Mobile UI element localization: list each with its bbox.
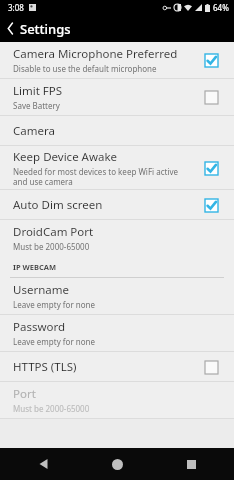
button[interactable]: Username	[0, 278, 234, 314]
staticText: 3:08	[8, 2, 24, 13]
staticText: Disable to use the default microphone	[13, 63, 157, 74]
staticText: Must be 2000-65000	[13, 241, 90, 252]
button[interactable]: Limit FPS unchecked	[199, 85, 223, 109]
staticText: Password	[13, 319, 66, 335]
button[interactable]: Recent apps	[161, 448, 221, 480]
staticText: Must be 2000-65000	[13, 403, 90, 414]
staticText: DroidCam Port	[13, 224, 94, 240]
staticText: Leave empty for none	[13, 336, 96, 347]
button[interactable]: Camera Microphone Preferred checked	[199, 48, 223, 72]
button[interactable]: Keep Device Awake	[0, 146, 234, 189]
button[interactable]: Auto Dim screen	[0, 190, 234, 219]
staticText: Limit FPS	[13, 83, 63, 99]
staticText: Keep Device Awake	[13, 149, 118, 165]
button[interactable]: HTTPS (TLS) unchecked	[199, 355, 223, 379]
button[interactable]: Port	[0, 382, 234, 418]
button[interactable]: Password	[0, 315, 234, 351]
button[interactable]: Home	[87, 448, 147, 480]
staticText: Leave empty for none	[13, 299, 96, 310]
staticText: Username	[13, 282, 69, 298]
button[interactable]: Back	[0, 15, 20, 42]
staticText: 64%	[213, 2, 229, 13]
staticText: Auto Dim screen	[13, 197, 103, 213]
staticText: Camera Microphone Preferred	[13, 46, 178, 62]
button[interactable]: Camera	[0, 116, 234, 145]
staticText: Needed for most devices to keep WiFi act…	[13, 166, 179, 187]
staticText: HTTPS (TLS)	[13, 359, 77, 375]
button[interactable]: Limit FPS	[0, 79, 234, 115]
staticText: Save Battery	[13, 100, 60, 111]
button[interactable]: Camera Microphone Preferred	[0, 42, 234, 78]
staticText: Camera	[13, 123, 55, 139]
button[interactable]: Back	[14, 448, 74, 480]
staticText: IP WEBCAM	[13, 262, 57, 272]
button[interactable]: DroidCam Port	[0, 220, 234, 256]
staticText: Settings	[20, 20, 71, 38]
button[interactable]: HTTPS (TLS)	[0, 352, 234, 381]
button[interactable]: Auto Dim screen checked	[199, 193, 223, 217]
staticText: Port	[13, 386, 36, 402]
button[interactable]: Keep Device Awake checked	[199, 156, 223, 180]
